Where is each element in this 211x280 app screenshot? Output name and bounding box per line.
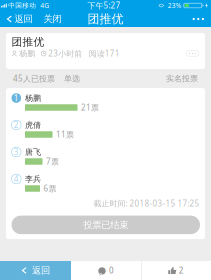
button[interactable]: More: [189, 11, 204, 27]
staticText: 关闭: [43, 13, 61, 25]
staticText: 中国移动: [8, 1, 36, 10]
staticText: 返回: [14, 13, 32, 25]
staticText: 截止时间: 2018-03-15 17:25: [93, 198, 199, 209]
staticText: 2: [179, 265, 184, 276]
staticText: 45人已投票: [13, 73, 55, 84]
staticText: 1: [14, 93, 19, 103]
staticText: 李兵: [25, 174, 41, 184]
staticText: 单选: [64, 74, 80, 83]
staticText: 返回: [32, 265, 50, 276]
button[interactable]: 关闭: [42, 11, 62, 27]
button[interactable]: 投票已结束: [11, 216, 200, 234]
staticText: 实名投票: [166, 74, 198, 83]
staticText: 团推优: [87, 12, 123, 26]
staticText: 0: [109, 265, 114, 276]
staticText: 团推优: [11, 35, 44, 48]
button[interactable]: 0: [71, 261, 141, 280]
staticText: 23%: [168, 1, 182, 10]
button[interactable]: 返回: [5, 11, 33, 27]
staticText: 下午5:27: [87, 0, 120, 11]
staticText: 投票已结束: [83, 219, 128, 231]
staticText: 4: [14, 174, 19, 184]
staticText: 唐飞: [25, 147, 41, 157]
staticText: 23小时前: [48, 48, 82, 59]
staticText: 杨鹏: [19, 49, 35, 58]
staticText: 阅读171: [89, 48, 120, 59]
staticText: 杨鹏: [25, 93, 41, 103]
button[interactable]: 返回: [0, 261, 71, 280]
staticText: 11票: [56, 129, 74, 140]
staticText: 2: [14, 120, 19, 130]
staticText: 4G: [40, 1, 49, 10]
button[interactable]: 2: [141, 261, 211, 280]
staticText: 6票: [43, 183, 56, 194]
staticText: 3: [14, 147, 19, 157]
staticText: 虎倩: [25, 120, 41, 130]
staticText: 21票: [81, 102, 99, 113]
staticText: 7票: [46, 156, 59, 167]
